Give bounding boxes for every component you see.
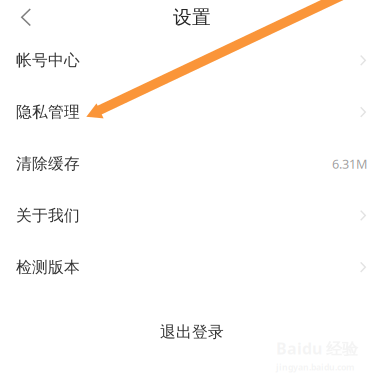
staticText: 帐号中心 — [16, 50, 80, 70]
staticText: 设置 — [173, 5, 211, 29]
staticText: 检测版本 — [16, 257, 80, 277]
staticText: 隐私管理 — [16, 102, 80, 122]
staticText: Baidu 经验 — [276, 337, 358, 359]
button[interactable]: 退出登录 — [0, 310, 384, 354]
staticText: 退出登录 — [160, 322, 224, 342]
button[interactable]: 关于我们 — [0, 190, 384, 241]
staticText: 6.31M — [332, 155, 367, 172]
button[interactable]: Back — [0, 0, 45, 34]
button[interactable]: 帐号中心 — [0, 34, 384, 86]
button[interactable]: 清除缓存 — [0, 138, 384, 190]
button[interactable]: 隐私管理 — [0, 86, 384, 138]
staticText: 清除缓存 — [16, 154, 80, 174]
staticText: jingyan.baidu.com — [276, 361, 354, 373]
button[interactable]: 检测版本 — [0, 241, 384, 293]
staticText: 关于我们 — [16, 205, 80, 225]
